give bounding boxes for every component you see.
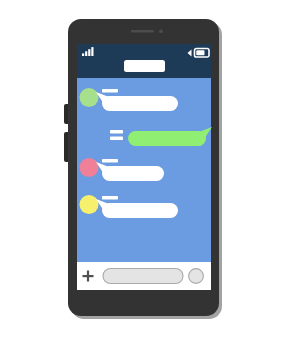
button[interactable]: Message input field bbox=[103, 268, 183, 284]
button[interactable]: Message from first contact bbox=[79, 86, 179, 113]
button[interactable]: Message from second contact bbox=[79, 156, 169, 183]
button[interactable]: Send bbox=[188, 268, 205, 285]
button[interactable]: Add attachment bbox=[80, 267, 98, 285]
button[interactable]: Conversation title bbox=[124, 58, 165, 74]
button[interactable]: Message from third contact bbox=[79, 193, 179, 220]
button[interactable]: Sent message bbox=[108, 127, 208, 151]
